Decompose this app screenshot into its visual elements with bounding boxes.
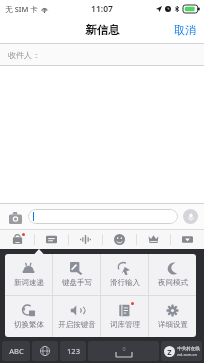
staticText: 收件人：	[8, 50, 40, 60]
staticText: 夜间模式	[158, 278, 188, 287]
staticText: 取消	[174, 23, 196, 37]
button[interactable]: Voice	[183, 209, 198, 224]
staticText: 11:07	[91, 3, 113, 15]
staticText: 开启按键音	[58, 320, 96, 329]
staticText: 无 SIM 卡	[5, 4, 38, 14]
button[interactable]: 开启按键音	[53, 296, 100, 337]
button[interactable]: 收件人：	[0, 44, 204, 65]
staticText: Z	[167, 347, 172, 357]
button[interactable]: 滑行输入	[101, 254, 148, 295]
button[interactable]: 切换繁体	[5, 296, 52, 337]
staticText: 词库管理	[110, 320, 140, 329]
staticText: zol.com.cn	[177, 352, 197, 357]
button[interactable]: Camera	[6, 208, 24, 226]
button[interactable]: 取消	[166, 19, 204, 41]
button[interactable]: Language	[32, 341, 58, 361]
staticText: 新信息	[85, 23, 120, 37]
button[interactable]: Text stickers	[35, 230, 68, 249]
button[interactable]: 词库管理	[101, 296, 148, 337]
button[interactable]: Sticker store	[0, 230, 34, 249]
staticText: 新词速递	[14, 278, 44, 287]
staticText: 123	[67, 346, 80, 356]
staticText: 中关村在线	[177, 346, 200, 352]
button[interactable]: Send	[161, 341, 202, 361]
staticText: 0	[122, 345, 126, 352]
button[interactable]: Collapse	[171, 230, 204, 249]
staticText: 切换繁体	[14, 320, 44, 329]
button[interactable]: 0	[88, 341, 159, 361]
button[interactable]: Emoji	[103, 230, 136, 249]
button[interactable]: 详细设置	[149, 296, 196, 337]
button[interactable]: 123	[60, 341, 86, 361]
button[interactable]: 新词速递	[5, 254, 52, 295]
button[interactable]	[28, 209, 178, 224]
staticText: ABC	[9, 346, 24, 356]
staticText: 详细设置	[158, 320, 188, 329]
staticText: 键盘手写	[62, 278, 92, 287]
button[interactable]: 键盘手写	[53, 254, 100, 295]
staticText: 滑行输入	[110, 278, 140, 287]
button[interactable]: Stickers	[137, 230, 170, 249]
button[interactable]: ABC	[2, 341, 30, 361]
button[interactable]: 夜间模式	[149, 254, 196, 295]
button[interactable]: Voice	[69, 230, 102, 249]
